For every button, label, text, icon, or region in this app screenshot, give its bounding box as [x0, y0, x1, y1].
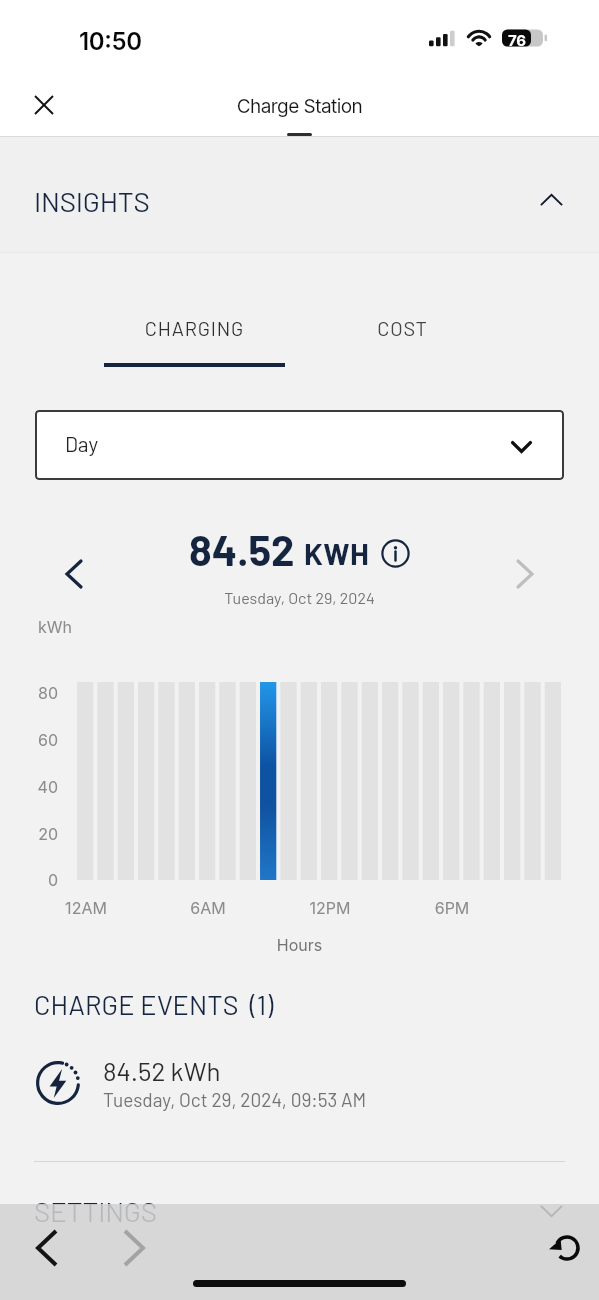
staticText: KWH [304, 535, 370, 571]
staticText: SETTINGS [34, 1194, 157, 1228]
button[interactable]: COST [312, 302, 493, 367]
staticText: 6AM [168, 898, 248, 917]
button[interactable]: Close [22, 83, 66, 127]
button[interactable]: Forward [106, 1220, 162, 1276]
staticText: 80 [20, 683, 58, 702]
staticText: 6PM [412, 898, 492, 917]
staticText: CHARGING [104, 316, 285, 340]
button[interactable]: Next period [503, 552, 547, 596]
staticText: 40 [20, 777, 58, 796]
staticText: 76 [504, 31, 530, 49]
staticText: 10:50 [79, 27, 142, 56]
staticText: Tuesday, Oct 29, 2024, 09:53 AM [103, 1088, 367, 1111]
button[interactable] [0, 137, 599, 252]
staticText: 60 [20, 730, 58, 749]
staticText: kWh [38, 617, 73, 636]
staticText: Hours [0, 935, 599, 954]
button[interactable]: Reload [539, 1220, 594, 1275]
staticText: COST [312, 316, 493, 340]
button[interactable] [0, 1175, 599, 1255]
button[interactable]: Back [19, 1220, 75, 1276]
staticText: Charge Station [0, 95, 599, 118]
staticText: 12AM [46, 898, 126, 917]
button[interactable]: CHARGING [104, 302, 285, 367]
staticText: 20 [20, 824, 58, 843]
staticText: 84.52 [189, 524, 295, 574]
staticText: CHARGE EVENTS (1) [34, 988, 274, 1020]
staticText: INSIGHTS [34, 184, 150, 218]
staticText: 0 [20, 870, 58, 889]
button[interactable]: 84.52 kWh [34, 1050, 565, 1116]
button[interactable]: Information [379, 537, 411, 569]
staticText: Day [65, 431, 99, 456]
staticText: 12PM [290, 898, 370, 917]
staticText: Tuesday, Oct 29, 2024 [0, 588, 599, 607]
staticText: 84.52 kWh [103, 1055, 221, 1086]
button[interactable]: Previous period [52, 552, 96, 596]
button[interactable] [35, 410, 564, 480]
